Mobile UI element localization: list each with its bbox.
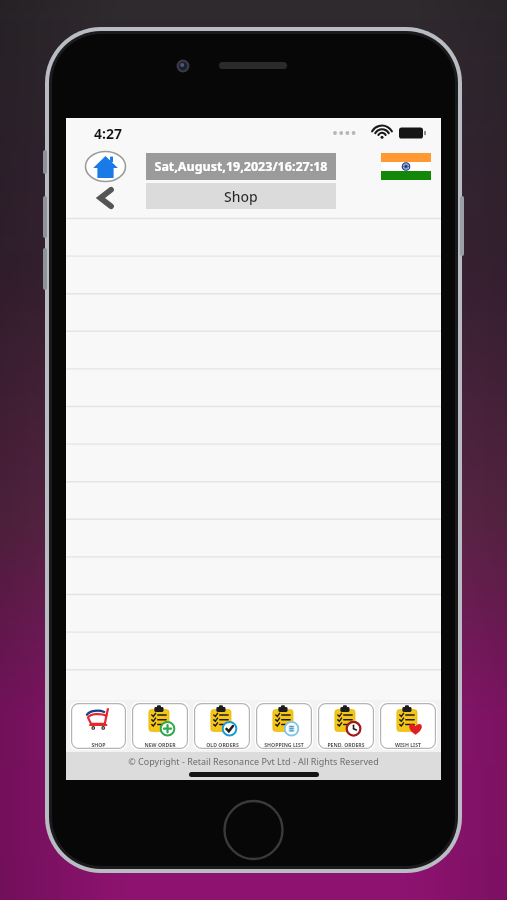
- button[interactable]: SHOP: [70, 702, 127, 750]
- staticText: © Copyright - Retail Resonance Pvt Ltd -…: [128, 755, 379, 767]
- button[interactable]: [66, 370, 441, 408]
- staticText: NEW ORDER: [144, 741, 176, 748]
- button[interactable]: Language India: [381, 153, 431, 180]
- staticText: OLD ORDERS: [206, 741, 239, 748]
- button[interactable]: [66, 636, 441, 674]
- button[interactable]: [66, 484, 441, 522]
- staticText: SHOPPING LIST: [264, 741, 304, 748]
- button[interactable]: [66, 560, 441, 598]
- button[interactable]: Sat,August,19,2023/16:27:18: [146, 153, 336, 180]
- button[interactable]: Shop: [146, 183, 336, 209]
- staticText: PEND. ORDERS: [327, 741, 365, 748]
- staticText: Sat,August,19,2023/16:27:18: [154, 158, 328, 175]
- button[interactable]: PEND. ORDERS: [317, 702, 375, 750]
- button[interactable]: Back: [92, 185, 120, 211]
- staticText: 4:27: [94, 124, 122, 143]
- staticText: SHOP: [91, 741, 106, 748]
- button[interactable]: WISH LIST: [379, 702, 437, 750]
- button[interactable]: NEW ORDER: [131, 702, 189, 750]
- button[interactable]: Home: [84, 150, 127, 183]
- button[interactable]: [66, 218, 441, 256]
- button[interactable]: SHOPPING LIST: [255, 702, 313, 750]
- staticText: Shop: [224, 187, 258, 206]
- button[interactable]: [66, 256, 441, 294]
- button[interactable]: [66, 294, 441, 332]
- button[interactable]: OLD ORDERS: [193, 702, 251, 750]
- button[interactable]: [66, 446, 441, 484]
- staticText: WISH LIST: [395, 741, 421, 748]
